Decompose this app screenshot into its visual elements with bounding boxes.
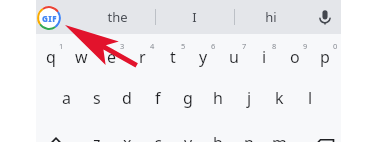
button[interactable]: Voice input — [311, 3, 339, 31]
staticText: l — [308, 87, 313, 109]
button[interactable]: b — [203, 123, 233, 142]
staticText: d — [122, 87, 132, 109]
button[interactable]: GIF — [34, 3, 64, 33]
staticText: j — [247, 87, 252, 109]
button[interactable]: x — [112, 123, 142, 142]
button[interactable]: a — [51, 78, 81, 118]
staticText: c — [154, 132, 162, 142]
button[interactable]: hi — [239, 0, 303, 34]
button[interactable]: m — [264, 123, 294, 142]
staticText: 7 — [242, 41, 247, 51]
staticText: b — [213, 132, 223, 142]
button[interactable]: the — [85, 0, 149, 34]
staticText: 9 — [303, 41, 308, 51]
staticText: 2 — [89, 41, 94, 51]
button[interactable]: t — [158, 37, 188, 77]
button[interactable]: p — [310, 37, 340, 77]
button[interactable]: i — [249, 37, 279, 77]
staticText: r — [139, 46, 146, 68]
button[interactable]: h — [203, 78, 233, 118]
button[interactable]: c — [143, 123, 173, 142]
staticText: q — [46, 46, 56, 68]
button[interactable]: w — [66, 37, 96, 77]
staticText: 1 — [59, 41, 64, 51]
staticText: 6 — [211, 41, 216, 51]
staticText: g — [183, 87, 193, 109]
staticText: u — [229, 46, 239, 68]
staticText: p — [320, 46, 330, 68]
staticText: x — [123, 132, 132, 142]
button[interactable]: e — [97, 37, 127, 77]
button[interactable]: k — [264, 78, 294, 118]
button[interactable]: u — [219, 37, 249, 77]
staticText: n — [244, 132, 254, 142]
staticText: a — [62, 87, 71, 109]
staticText: I — [192, 8, 197, 26]
button[interactable]: Shift — [40, 126, 72, 142]
button[interactable]: z — [82, 123, 112, 142]
button[interactable]: o — [280, 37, 310, 77]
button[interactable]: l — [295, 78, 325, 118]
button[interactable]: v — [173, 123, 203, 142]
button[interactable]: r — [127, 37, 157, 77]
staticText: the — [107, 8, 128, 26]
staticText: 4 — [150, 41, 155, 51]
button[interactable]: q — [36, 37, 66, 77]
staticText: f — [155, 87, 161, 109]
staticText: 0 — [333, 41, 338, 51]
staticText: w — [75, 46, 88, 68]
button[interactable]: f — [143, 78, 173, 118]
button[interactable]: d — [112, 78, 142, 118]
staticText: o — [290, 46, 300, 68]
button[interactable]: g — [173, 78, 203, 118]
button[interactable]: j — [234, 78, 264, 118]
button[interactable]: s — [82, 78, 112, 118]
staticText: z — [93, 132, 101, 142]
button[interactable]: I — [162, 0, 226, 34]
staticText: 5 — [181, 41, 186, 51]
staticText: v — [184, 132, 193, 142]
button[interactable]: Backspace — [308, 126, 340, 142]
staticText: k — [275, 87, 284, 109]
staticText: m — [272, 132, 287, 142]
staticText: s — [93, 87, 101, 109]
staticText: GIF — [42, 13, 57, 24]
staticText: t — [170, 46, 176, 68]
button[interactable]: y — [188, 37, 218, 77]
staticText: h — [213, 87, 223, 109]
staticText: 3 — [120, 41, 125, 51]
staticText: 8 — [272, 41, 277, 51]
button[interactable]: n — [234, 123, 264, 142]
staticText: y — [199, 46, 208, 68]
staticText: hi — [265, 8, 277, 26]
staticText: i — [262, 46, 267, 68]
staticText: e — [107, 46, 117, 68]
